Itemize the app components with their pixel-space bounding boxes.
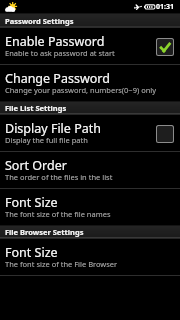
staticText: 01:31 <box>156 2 174 12</box>
button[interactable]: Display File Path <box>0 115 180 151</box>
staticText: Enable to ask password at start <box>5 48 115 58</box>
staticText: File Browser Settings <box>5 227 84 237</box>
staticText: The font size of the file names <box>5 209 111 219</box>
staticText: Display the full file path <box>5 135 88 145</box>
staticText: Change Password <box>5 70 110 87</box>
button[interactable]: Font Size <box>0 239 180 275</box>
staticText: Change your password, numbers(0~9) only <box>5 85 157 95</box>
button[interactable]: Enable Password <box>0 28 180 64</box>
button[interactable]: Checked <box>156 38 174 56</box>
other: Airplane mode <box>134 4 142 10</box>
button[interactable]: Unchecked <box>156 125 174 143</box>
button[interactable]: Password Settings <box>0 13 180 28</box>
staticText: Font Size <box>5 194 58 211</box>
button[interactable]: Change Password <box>0 65 180 101</box>
other: Battery <box>144 4 155 10</box>
staticText: Font Size <box>5 244 58 261</box>
staticText: Display File Path <box>5 120 101 137</box>
staticText: The font size of the File Browser <box>5 259 118 269</box>
staticText: Sort Order <box>5 157 67 174</box>
staticText: File List Settings <box>5 103 67 113</box>
staticText: Password Settings <box>5 16 74 26</box>
staticText: Enable Password <box>5 33 105 50</box>
button[interactable]: Sort Order <box>0 152 180 188</box>
staticText: The order of the files in the list <box>5 172 113 182</box>
button[interactable]: Font Size <box>0 189 180 225</box>
